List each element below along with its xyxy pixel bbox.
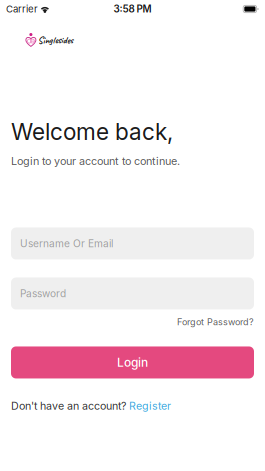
staticText: Password — [20, 287, 66, 300]
staticText: Register — [129, 399, 171, 412]
staticText: Forgot Password? — [177, 316, 254, 327]
button[interactable]: Password — [11, 277, 254, 309]
staticText: Login to your account to continue. — [11, 154, 180, 167]
staticText: Singlesides — [38, 34, 73, 46]
button[interactable]: Register — [129, 399, 171, 412]
staticText: Welcome back, — [11, 118, 173, 145]
button[interactable]: Login — [11, 346, 254, 378]
staticText: Login — [117, 355, 148, 370]
staticText: 3:58 PM — [113, 3, 151, 15]
staticText: Don't have an account? — [11, 399, 129, 412]
button[interactable]: Forgot Password? — [11, 309, 254, 328]
staticText: Username Or Email — [20, 237, 113, 250]
button[interactable]: Username Or Email — [11, 227, 254, 259]
staticText: Carrier — [6, 3, 38, 15]
